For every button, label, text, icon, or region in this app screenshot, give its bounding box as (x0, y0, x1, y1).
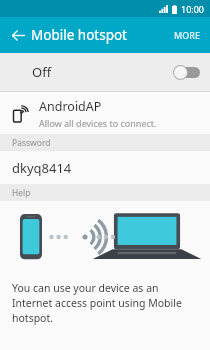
button[interactable]: Back (5, 22, 31, 48)
staticText: dkyq8414 (12, 159, 72, 177)
button[interactable]: MORE (168, 23, 207, 47)
staticText: Password (12, 137, 51, 149)
staticText: Off (32, 63, 52, 81)
button[interactable]: dkyq8414 (0, 151, 210, 184)
staticText: 10:00 (181, 3, 205, 15)
staticText: Mobile hotspot (31, 26, 127, 44)
staticText: Help (12, 187, 31, 199)
staticText: MORE (174, 29, 201, 41)
staticText: Allow all devices to connect. (39, 117, 157, 129)
staticText: AndroidAP (39, 98, 102, 115)
button[interactable]: AndroidAP (0, 92, 210, 134)
button[interactable]: Off (0, 53, 210, 91)
staticText: You can use your device as an Internet a… (12, 281, 198, 325)
